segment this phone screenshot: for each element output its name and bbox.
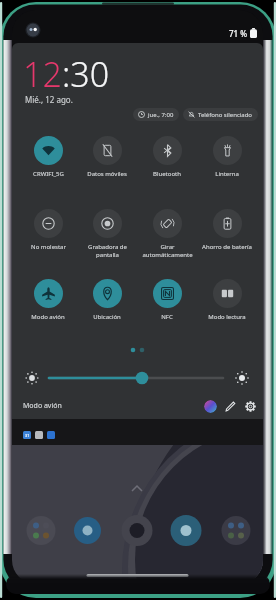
staticText: Girar automáticamente: [142, 243, 193, 259]
button[interactable]: jue., 7:00: [133, 108, 179, 121]
button[interactable]: No molestar: [19, 209, 77, 251]
staticText: Datos móviles: [87, 170, 127, 178]
button[interactable]: Ajustes: [244, 400, 257, 413]
staticText: Mié., 12 ago.: [25, 94, 73, 105]
button[interactable]: Bluetooth: [138, 136, 196, 178]
button[interactable]: Girar automáticamente: [138, 209, 196, 259]
staticText: Ubicación: [93, 313, 121, 321]
button[interactable]: Ubicación: [78, 279, 136, 321]
staticText: Linterna: [215, 170, 239, 178]
staticText: Bluetooth: [153, 170, 181, 178]
button[interactable]: Teléfono silenciado: [183, 108, 258, 121]
button[interactable]: Usuario: [204, 400, 217, 413]
button[interactable]: Ahorro de batería: [198, 209, 256, 251]
staticText: No molestar: [31, 243, 66, 251]
button[interactable]: Datos móviles: [78, 136, 136, 178]
staticText: 12: [23, 51, 62, 97]
button[interactable]: Editar: [224, 400, 237, 413]
button[interactable]: NFC: [138, 279, 196, 321]
staticText: Modo avión: [31, 313, 65, 321]
staticText: 31: [25, 433, 30, 438]
staticText: Modo lectura: [208, 313, 246, 321]
staticText: jue., 7:00: [148, 111, 174, 119]
staticText: :30: [62, 51, 110, 97]
staticText: Modo avión: [23, 401, 62, 411]
staticText: Ahorro de batería: [202, 243, 252, 251]
button[interactable]: Linterna: [198, 136, 256, 178]
button[interactable]: Grabadora de pantalla: [78, 209, 136, 259]
button[interactable]: Modo avión: [19, 279, 77, 321]
staticText: CRWIFI_5G: [33, 170, 64, 178]
staticText: NFC: [161, 313, 173, 321]
button[interactable]: Modo lectura: [198, 279, 256, 321]
staticText: Grabadora de pantalla: [88, 243, 127, 259]
staticText: 71 %: [229, 28, 248, 39]
staticText: Teléfono silenciado: [198, 111, 253, 119]
button[interactable]: CRWIFI_5G: [19, 136, 77, 178]
